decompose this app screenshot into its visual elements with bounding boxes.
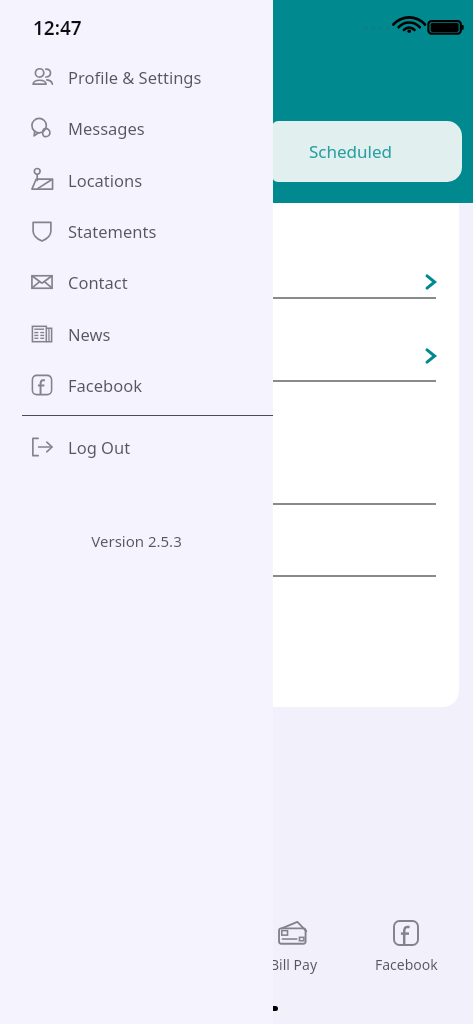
button[interactable]: News bbox=[0, 311, 273, 357]
button[interactable]: Facebook bbox=[0, 362, 273, 408]
button[interactable]: Locations bbox=[0, 157, 273, 203]
staticText: Scheduled bbox=[309, 140, 392, 163]
staticText: Locations bbox=[68, 169, 143, 191]
staticText: Version 2.5.3 bbox=[0, 531, 273, 551]
staticText: News bbox=[68, 323, 111, 345]
button[interactable]: Log Out bbox=[0, 424, 273, 470]
button[interactable]: Statements bbox=[0, 208, 273, 254]
button[interactable]: Open item bbox=[414, 265, 448, 299]
button[interactable]: Facebook bbox=[362, 915, 450, 985]
staticText: Profile & Settings bbox=[68, 66, 202, 88]
staticText: Statements bbox=[68, 220, 157, 242]
staticText: Facebook bbox=[68, 374, 142, 396]
button[interactable]: Contact bbox=[0, 259, 273, 305]
staticText: Facebook bbox=[375, 955, 438, 974]
staticText: Bill Pay bbox=[270, 955, 318, 974]
button[interactable]: Open item bbox=[414, 339, 448, 373]
staticText: Messages bbox=[68, 117, 145, 139]
button[interactable]: Messages bbox=[0, 105, 273, 151]
button[interactable]: Profile & Settings bbox=[0, 54, 273, 100]
staticText: Contact bbox=[68, 271, 128, 293]
staticText: Log Out bbox=[68, 436, 131, 458]
button[interactable]: Scheduled bbox=[272, 121, 462, 182]
staticText: 12:47 bbox=[33, 15, 82, 41]
button[interactable]: Bill Pay bbox=[248, 915, 340, 985]
